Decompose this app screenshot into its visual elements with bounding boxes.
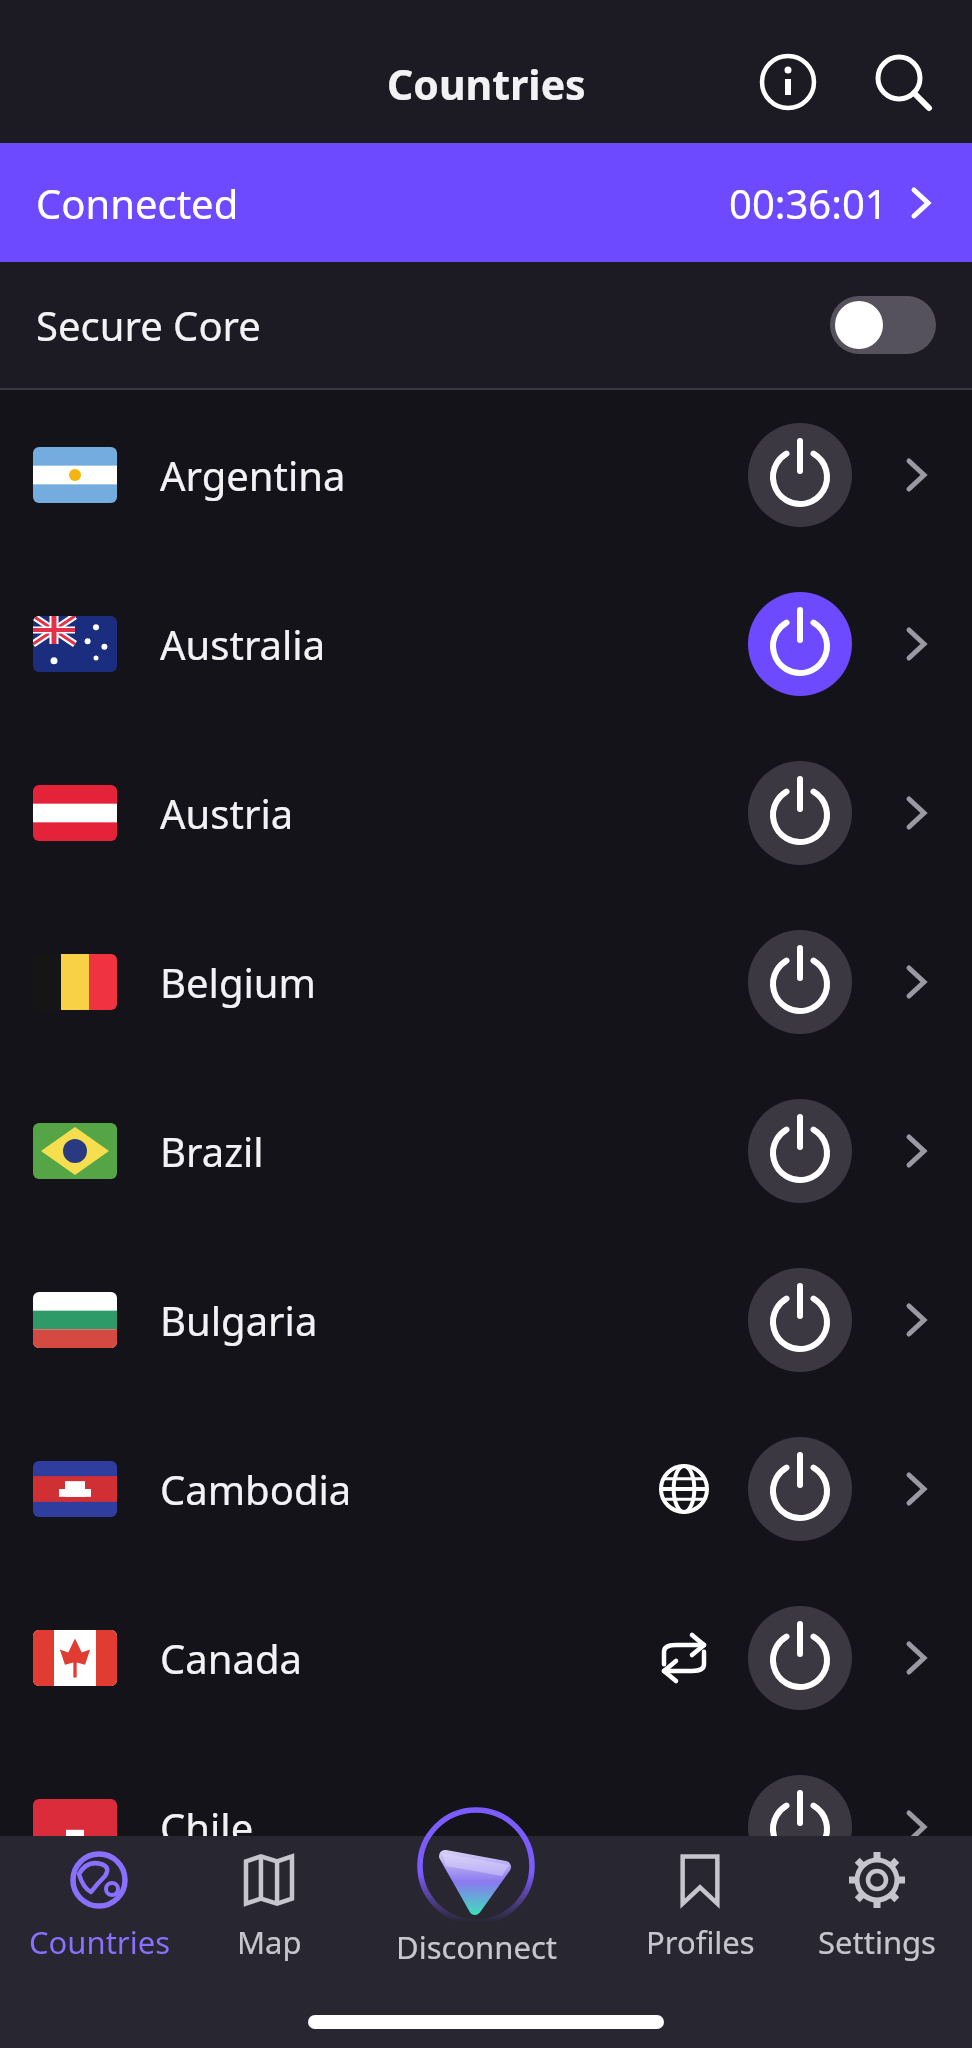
button[interactable]: Brazil [0,1066,972,1235]
button[interactable]: Cambodia [0,1404,972,1573]
staticText: Austria [160,786,294,840]
staticText: 00:36:01 [729,176,888,230]
button[interactable]: Secure Core [0,262,972,388]
button[interactable]: Map [184,1849,354,1963]
button[interactable]: Disconnect [376,1806,576,1968]
button[interactable] [748,761,852,865]
button[interactable]: Australia [0,559,972,728]
button[interactable] [748,1268,852,1372]
staticText: Map [237,1921,302,1963]
staticText: Disconnect [396,1926,557,1968]
staticText: Cambodia [160,1462,352,1516]
button[interactable]: Canada [0,1573,972,1742]
staticText: Australia [160,617,326,671]
button[interactable] [830,296,936,354]
staticText: Secure Core [36,298,261,352]
button[interactable] [748,592,852,696]
staticText: Settings [818,1921,936,1963]
button[interactable]: Argentina [0,390,972,559]
staticText: Chile [160,1800,254,1854]
button[interactable]: Chile [0,1742,972,1911]
staticText: Belgium [160,955,316,1009]
button[interactable] [756,50,820,114]
staticText: Profiles [646,1921,755,1963]
button[interactable] [748,930,852,1034]
button[interactable] [748,423,852,527]
button[interactable]: Connected [0,143,972,262]
button[interactable] [748,1437,852,1541]
button[interactable]: Bulgaria [0,1235,972,1404]
button[interactable]: Countries [14,1849,184,1963]
staticText: Brazil [160,1124,264,1178]
staticText: Canada [160,1631,302,1685]
staticText: Countries [387,56,586,112]
staticText: Connected [36,176,239,230]
staticText: Countries [29,1921,170,1963]
button[interactable] [748,1606,852,1710]
button[interactable] [748,1775,852,1879]
button[interactable]: Austria [0,728,972,897]
button[interactable]: Belgium [0,897,972,1066]
button[interactable]: Settings [792,1849,962,1963]
button[interactable]: Profiles [615,1849,785,1963]
button[interactable] [748,1099,852,1203]
staticText: Bulgaria [160,1293,318,1347]
staticText: Argentina [160,448,346,502]
button[interactable] [871,50,935,114]
